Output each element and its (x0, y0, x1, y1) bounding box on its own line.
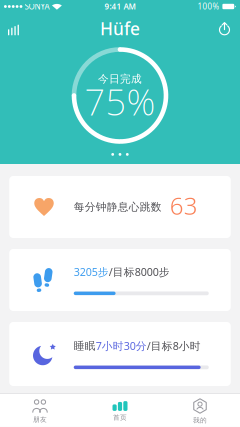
button[interactable]: Share (218, 22, 240, 35)
staticText: 63 (170, 190, 198, 221)
staticText: /目标8小时 (147, 339, 201, 353)
staticText: 今日完成 (98, 72, 142, 85)
staticText: 朋友 (33, 415, 47, 424)
button[interactable]: 睡眠 (9, 322, 231, 386)
staticText: 每分钟静息心跳数 (74, 200, 162, 213)
staticText: 睡眠 (74, 339, 96, 352)
staticText: 7小时30分 (96, 339, 147, 353)
button[interactable]: 朋友 (0, 394, 80, 427)
button[interactable]: 每分钟静息心跳数 (9, 176, 231, 238)
staticText: 首页 (113, 413, 127, 422)
staticText: SONYA (24, 1, 49, 12)
button[interactable]: 我的 (160, 394, 240, 427)
button[interactable]: 3205步 (9, 249, 231, 311)
button[interactable]: 首页 (80, 394, 160, 427)
staticText: 100% (197, 1, 219, 12)
staticText: 75% (84, 78, 155, 125)
staticText: 3205步 (74, 265, 109, 279)
staticText: /目标8000步 (109, 265, 170, 279)
staticText: 我的 (193, 416, 207, 424)
staticText: 9:41 AM (104, 1, 135, 12)
staticText: Hüfe (100, 17, 140, 40)
button[interactable]: Statistics (0, 22, 19, 35)
